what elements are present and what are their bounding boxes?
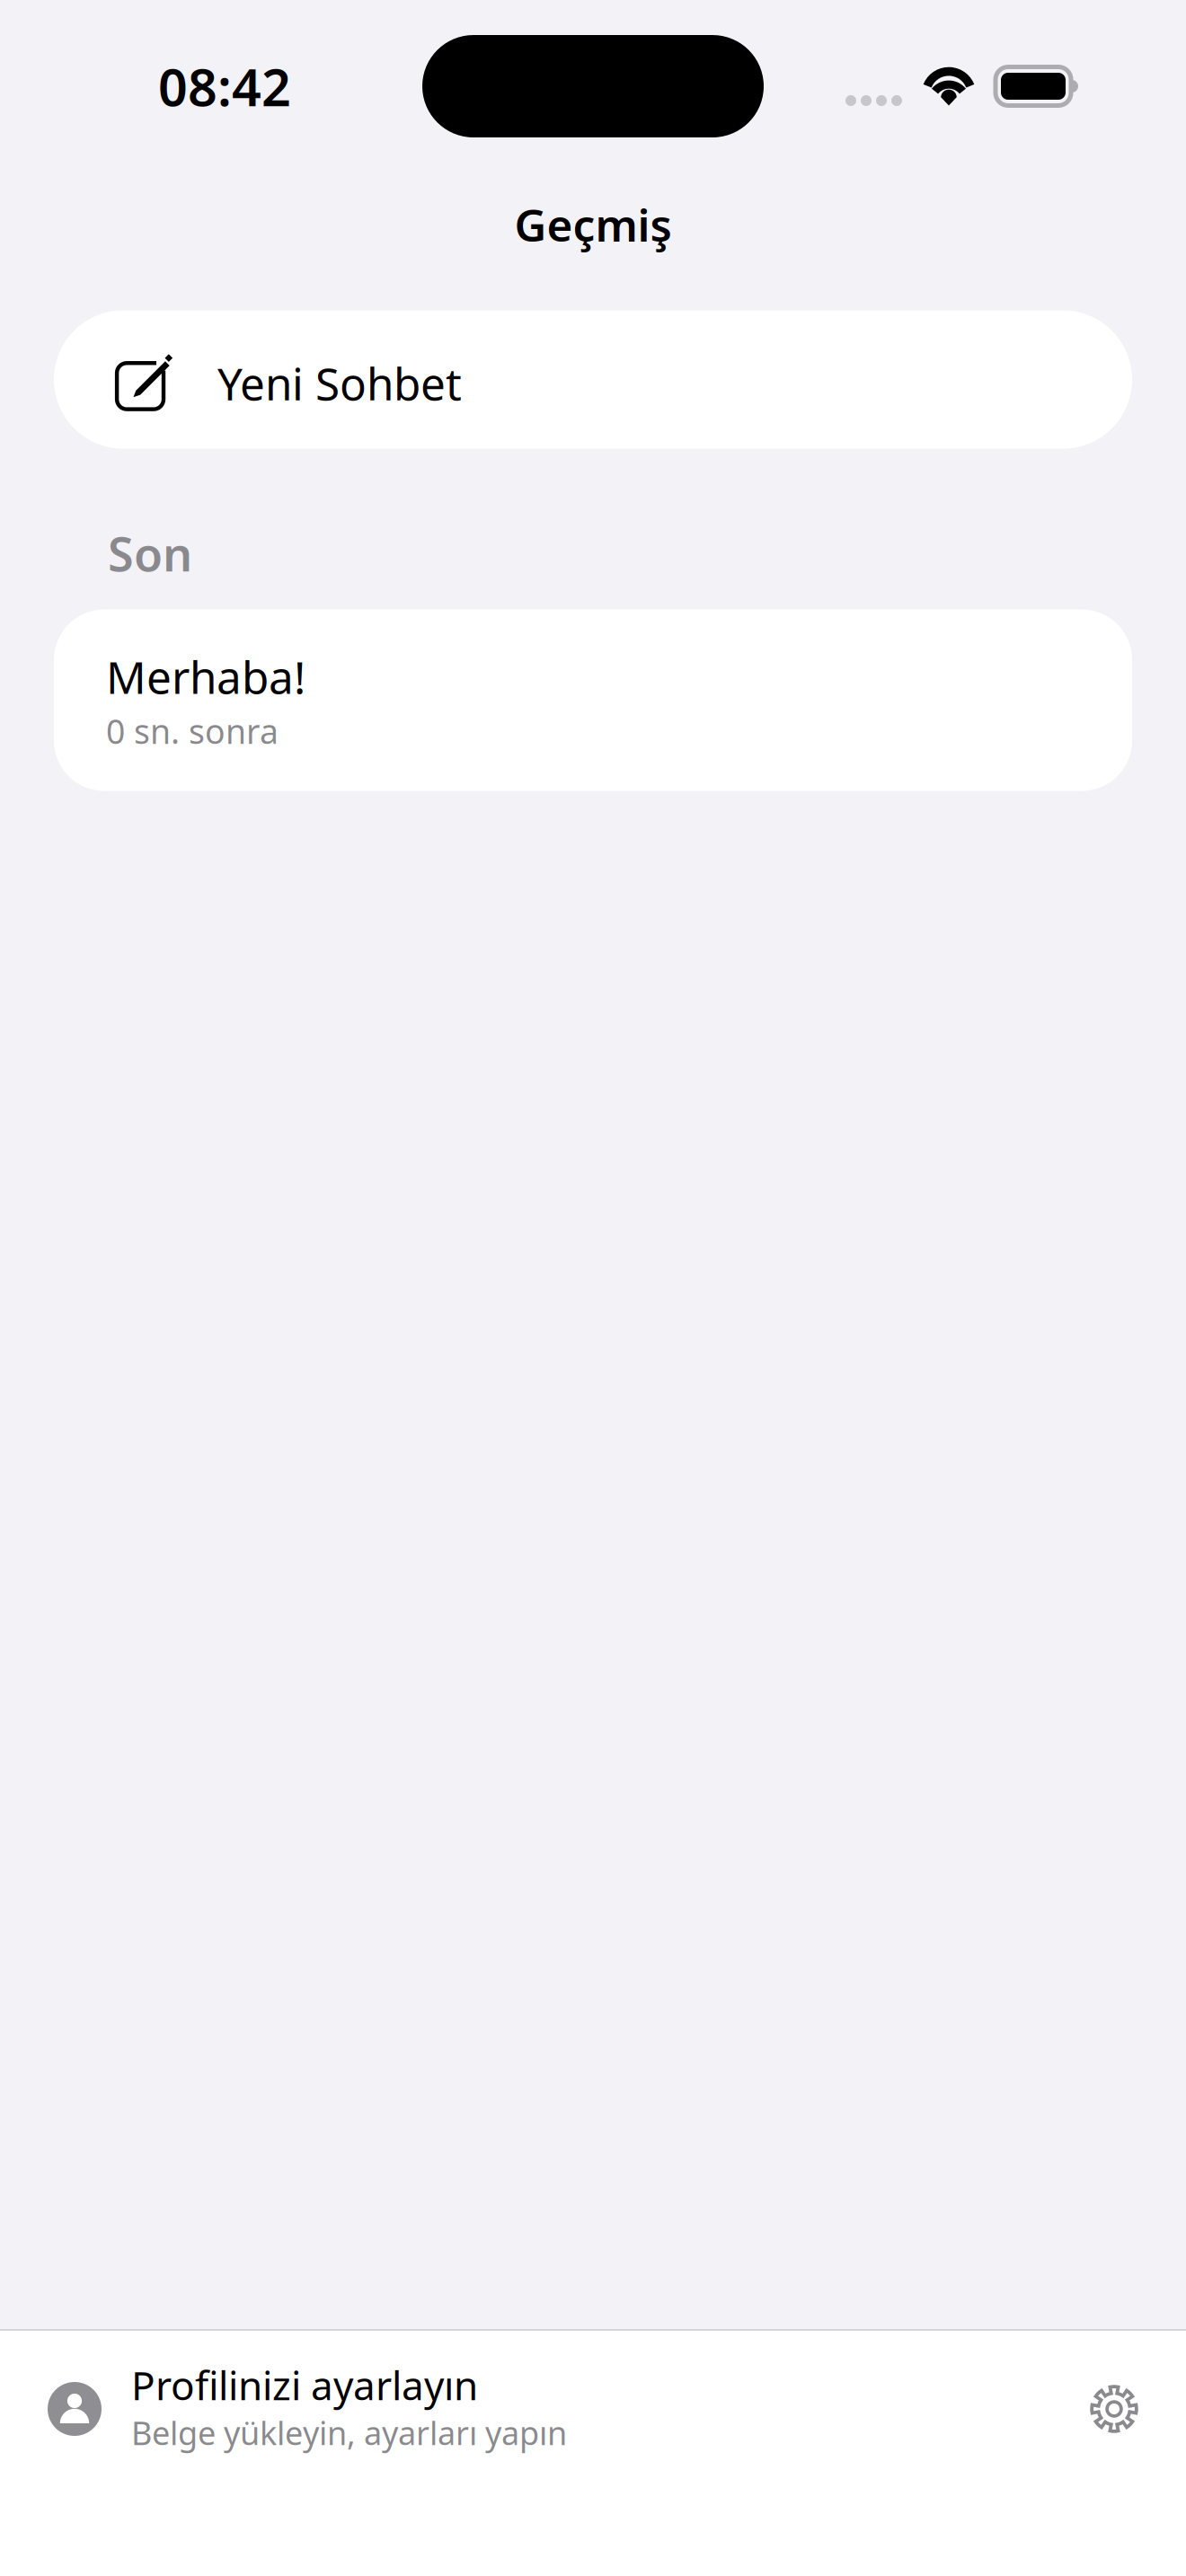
button[interactable]: Ayarlar [1063,2331,1186,2487]
staticText: 08:42 [158,52,291,120]
button[interactable]: Profilinizi ayarlayın [0,2331,1063,2487]
staticText: Yeni Sohbet [217,354,462,413]
button[interactable]: Merhaba! [54,610,1132,791]
staticText: 0 sn. sonra [106,709,279,753]
staticText: Profilinizi ayarlayın [131,2359,478,2411]
button[interactable]: Yeni Sohbet [54,310,1132,449]
staticText: Belge yükleyin, ayarları yapın [131,2411,567,2454]
staticText: Son [108,522,192,584]
staticText: Geçmiş [514,195,672,254]
staticText: Merhaba! [106,647,305,706]
